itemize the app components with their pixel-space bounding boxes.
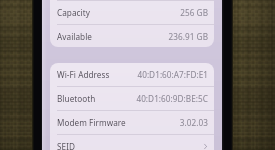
staticText: 40:D1:60:9D:BE:5C [136,93,208,104]
button[interactable]: SEID [50,135,214,150]
staticText: 236.91 GB [168,31,208,42]
button[interactable]: Bluetooth [50,87,214,110]
staticText: Capacity [57,7,90,18]
staticText: Available [57,31,93,42]
staticText: Wi-Fi Address [57,69,110,80]
staticText: 256 GB [180,7,208,18]
staticText: 40:D1:60:A7:FD:E1 [137,69,208,80]
staticText: SEID [57,141,75,150]
button[interactable]: Wi-Fi Address [50,63,214,86]
staticText: Modem Firmware [57,117,126,128]
button[interactable]: Modem Firmware [50,111,214,134]
staticText: 3.02.03 [179,117,208,128]
button[interactable]: Available [50,25,214,47]
other: SEID details [203,142,208,150]
button[interactable]: Capacity [50,1,214,24]
staticText: Bluetooth [57,93,96,104]
